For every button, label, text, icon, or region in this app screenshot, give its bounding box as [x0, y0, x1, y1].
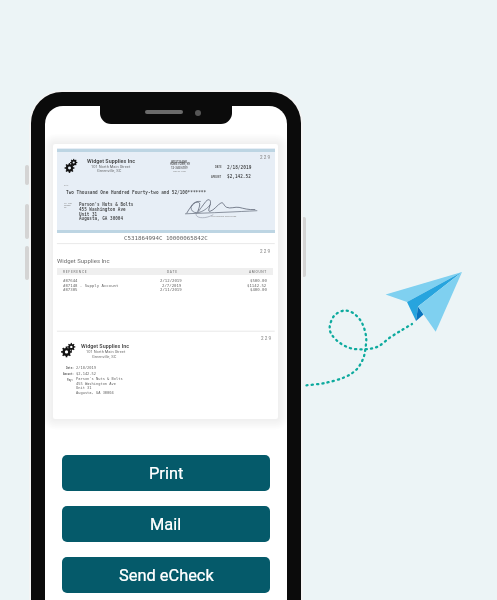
staticText: 455 Washington Ave — [79, 207, 126, 212]
staticText: Mail — [150, 515, 182, 534]
staticText: #87305 — [63, 287, 78, 292]
staticText: 101 North Main Street — [86, 349, 126, 354]
staticText: Greenville, SC — [92, 354, 117, 359]
staticText: DATE — [167, 270, 178, 274]
button[interactable]: Mail — [62, 506, 270, 542]
staticText: 2/11/2019 — [160, 287, 182, 292]
staticText: Greenville, SC — [97, 168, 122, 173]
staticText: 2/18/2019 — [227, 165, 252, 170]
staticText: $2,142.52 — [227, 174, 251, 179]
staticText: $2,142.52 — [76, 372, 96, 376]
staticText: ORDER — [64, 204, 71, 207]
staticText: Parson's Nuts & Bolts — [76, 377, 123, 381]
staticText: PAY — [64, 184, 69, 187]
staticText: C531864994C 10000065842C — [124, 235, 208, 242]
staticText: 2/18/2019 — [76, 366, 96, 370]
staticText: AMOUNT — [249, 270, 268, 274]
staticText: TO THE — [64, 202, 72, 205]
staticText: #87148 - Supply Account — [63, 283, 119, 288]
staticText: 455 Washington Ave — [76, 382, 116, 386]
staticText: 2 2 9 — [260, 249, 271, 254]
staticText: AUTHORIZED SIGNATURE — [211, 215, 237, 218]
staticText: Amount: — [63, 373, 74, 376]
staticText: Widget Supplies Inc — [87, 158, 136, 164]
staticText: Augusta, GA 30004 — [76, 391, 114, 395]
staticText: Two Thousand One Hundred Fourty-two and … — [66, 190, 207, 195]
staticText: 2/7/2019 — [162, 283, 182, 288]
staticText: 2/12/2019 — [160, 278, 182, 283]
staticText: HOME TOWN, NY — [170, 163, 191, 166]
staticText: OF — [64, 206, 67, 209]
staticText: Print — [149, 464, 184, 483]
staticText: 2 2 9 — [261, 336, 272, 341]
staticText: Widget Supplies Inc — [81, 343, 130, 349]
staticText: DATE — [215, 165, 222, 168]
staticText: 101 North Main Street — [91, 164, 131, 169]
staticText: Date: — [66, 367, 74, 370]
staticText: Widget Supplies Inc — [57, 257, 110, 264]
staticText: REFERENCE — [63, 270, 88, 274]
staticText: $400.00 — [250, 287, 267, 292]
staticText: $500.00 — [250, 278, 267, 283]
staticText: MEMO LINE — [173, 170, 186, 173]
staticText: $1142.52 — [247, 283, 267, 288]
staticText: 12-345/6789 — [171, 166, 188, 169]
staticText: Pay: — [67, 379, 74, 382]
staticText: Send eCheck — [119, 566, 214, 585]
staticText: 2 2 9 — [260, 155, 271, 160]
staticText: AMOUNT — [211, 175, 222, 178]
staticText: Unit 31 — [76, 386, 92, 390]
staticText: Augusta, GA 30004 — [79, 216, 123, 221]
button[interactable]: Print — [62, 455, 270, 491]
staticText: WEST BANK — [171, 160, 188, 163]
button[interactable]: Send eCheck — [62, 557, 270, 593]
staticText: Parson's Nuts & Bolts — [79, 202, 134, 207]
staticText: Unit 31 — [79, 212, 98, 217]
staticText: #87644 — [63, 278, 78, 283]
